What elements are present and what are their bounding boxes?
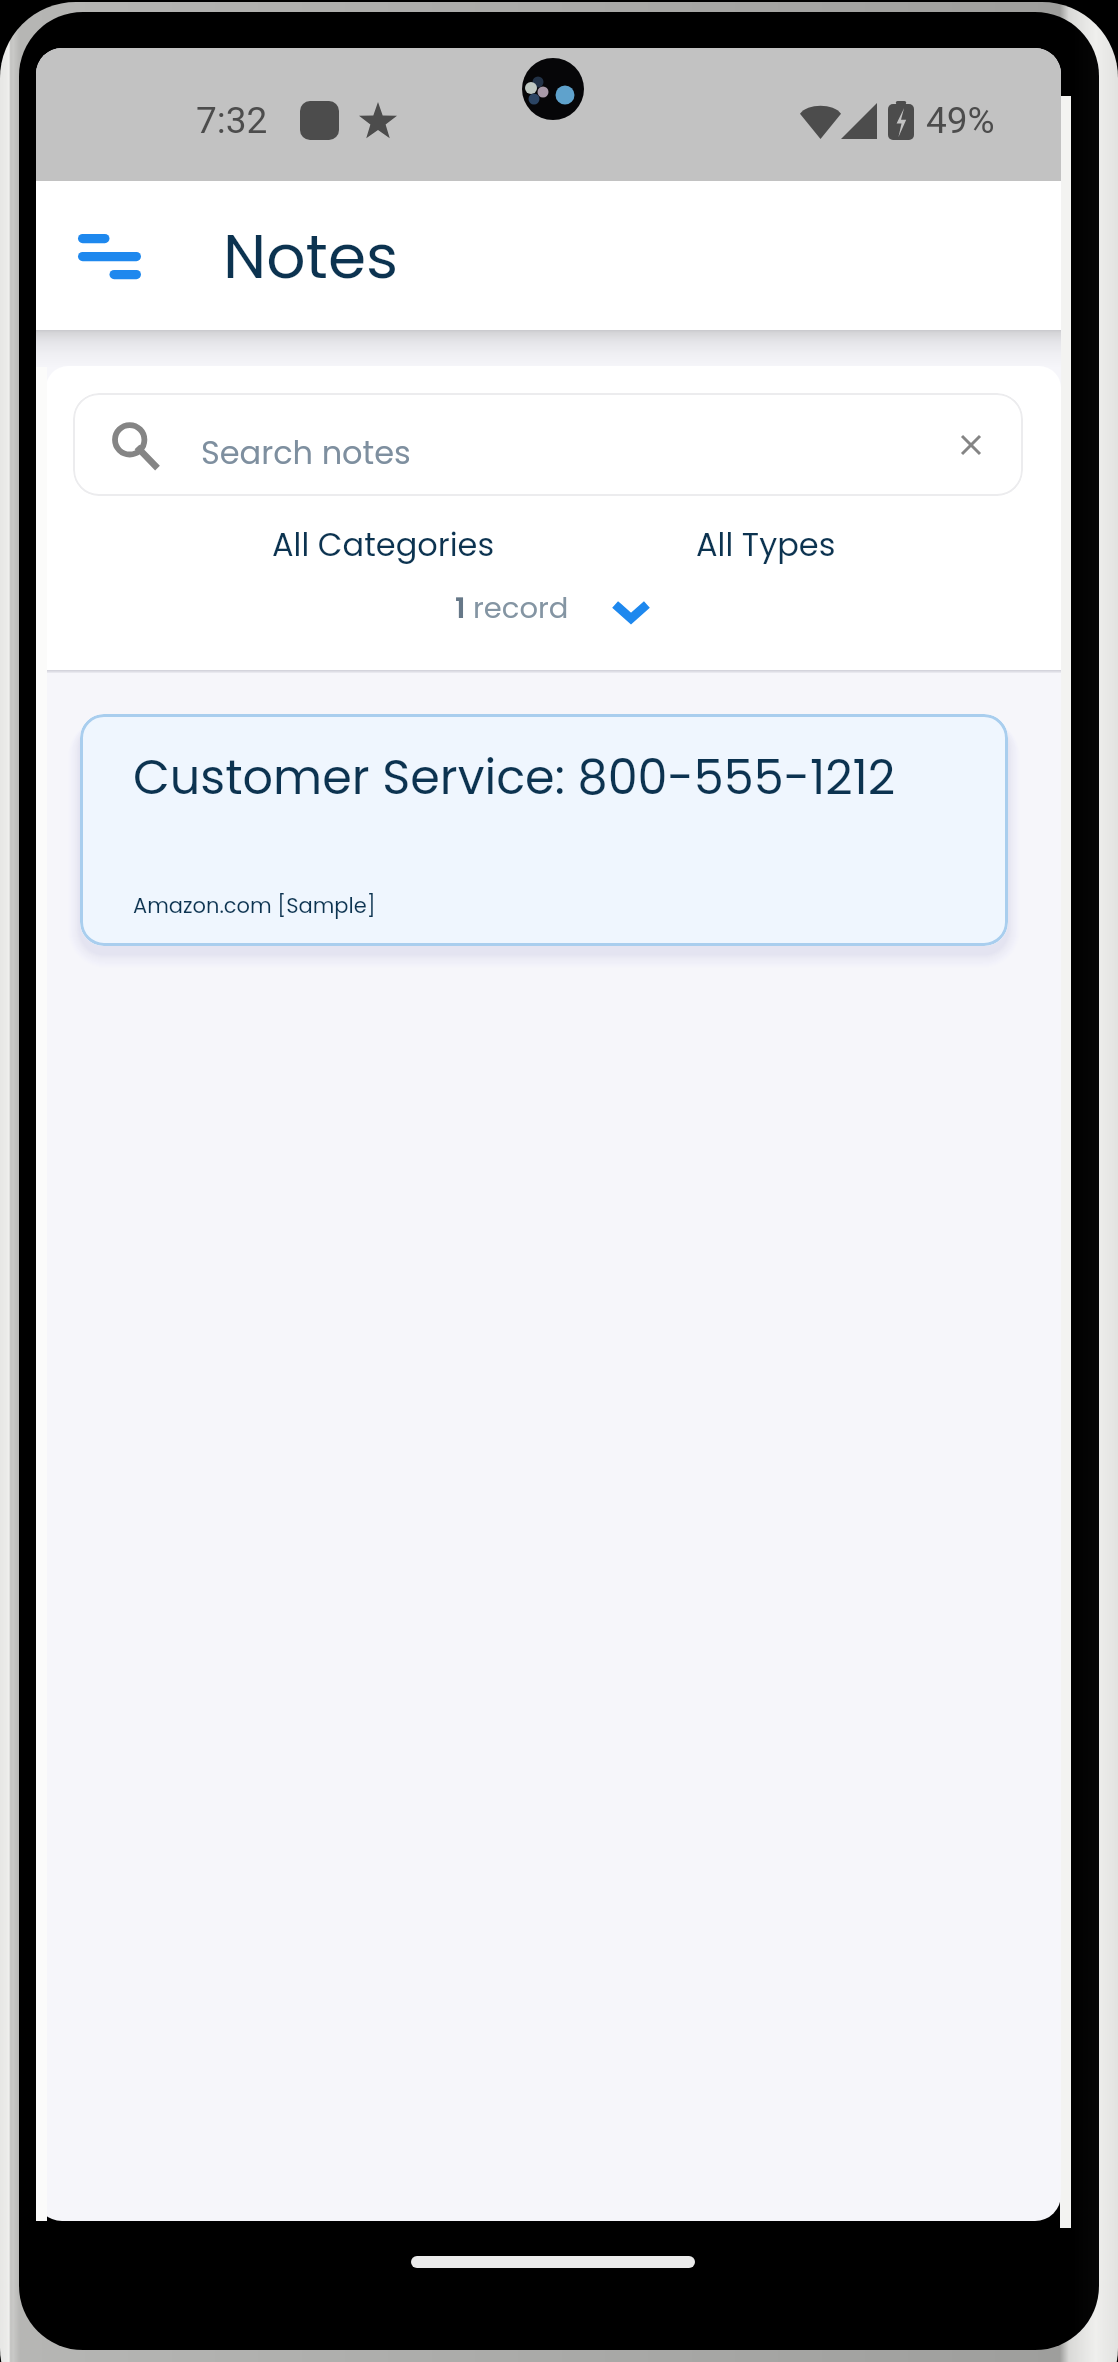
staticText: 1: [455, 588, 466, 629]
button[interactable]: All Categories: [216, 515, 551, 573]
staticText: All Types: [696, 522, 836, 567]
staticText: record: [473, 588, 569, 629]
staticText: Customer Service: 800-555-1212: [133, 744, 896, 811]
button[interactable]: Search notes: [73, 393, 1023, 496]
button[interactable]: Customer Service: 800-555-1212: [80, 714, 1008, 946]
staticText: All Categories: [272, 522, 495, 567]
staticText: 49%: [926, 99, 995, 142]
staticText: Notes: [223, 213, 399, 299]
staticText: Search notes: [201, 430, 411, 475]
button[interactable]: 1: [46, 584, 1061, 640]
staticText: 7:32: [196, 99, 268, 142]
button[interactable]: Clear search: [941, 415, 1001, 475]
staticText: Amazon.com [Sample]: [133, 891, 376, 920]
button[interactable]: All Types: [646, 515, 885, 573]
button[interactable]: Filter menu: [59, 201, 159, 311]
